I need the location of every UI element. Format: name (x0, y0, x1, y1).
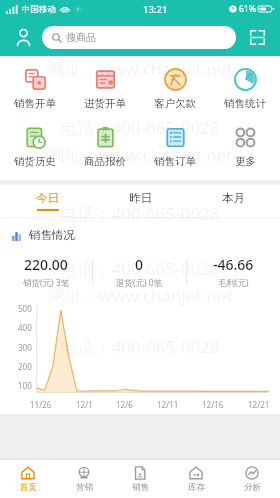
staticText: 客户欠款 (154, 97, 196, 110)
staticText: 61% (239, 3, 256, 15)
staticText: 12/1 (76, 399, 93, 410)
staticText: 300 (18, 342, 32, 353)
staticText: 中国移动 (22, 4, 56, 15)
staticText: 200 (18, 361, 32, 372)
button[interactable]: 销售统计 (210, 66, 280, 112)
staticText: 0 (135, 255, 144, 274)
staticText: 11/26 (30, 399, 52, 410)
staticText: 网址：www.chanjet.net (0, 284, 280, 307)
staticText: 商品报价 (84, 155, 126, 168)
staticText: 营销 (76, 482, 93, 493)
staticText: 220.00 (24, 255, 68, 274)
staticText: 分析 (244, 482, 261, 493)
staticText: 更多 (235, 155, 256, 168)
staticText: 销售统计 (224, 97, 266, 110)
button[interactable]: Scan (244, 24, 270, 50)
staticText: 电话：400-665-0028 (0, 335, 280, 358)
staticText: 退货(元) 0笔 (116, 277, 163, 289)
button[interactable]: 进货开单 (70, 66, 140, 112)
staticText: 库存 (188, 482, 205, 493)
button[interactable]: Profile (10, 24, 36, 50)
staticText: 网址：www.chanjet.net (0, 57, 280, 80)
button[interactable]: 搜商品 (42, 26, 236, 49)
button[interactable]: 昨日 (94, 185, 187, 217)
staticText: 100 (18, 380, 32, 391)
staticText: 销货历史 (14, 155, 56, 168)
staticText: 本月 (222, 191, 245, 205)
staticText: 销售订单 (154, 155, 196, 168)
button[interactable]: 分析 (224, 460, 280, 498)
button[interactable]: 更多 (210, 124, 280, 170)
button[interactable]: 商品报价 (70, 124, 140, 170)
staticText: 进货开单 (84, 97, 126, 110)
staticText: 电话：400-665-0028 (0, 257, 280, 280)
staticText: 销货(元) 3笔 (23, 277, 70, 289)
staticText: 电话：400-665-0028 (0, 202, 280, 225)
staticText: 首页 (20, 482, 37, 493)
staticText: 400 (18, 322, 32, 333)
staticText: 电话：400-665-0028 (0, 116, 280, 139)
button[interactable]: 首页 (0, 460, 56, 498)
staticText: 12/16 (202, 399, 224, 410)
staticText: 12/11 (157, 399, 179, 410)
button[interactable]: 库存 (168, 460, 224, 498)
button[interactable]: 销售开单 (0, 66, 70, 112)
button[interactable]: 客户欠款 (140, 66, 210, 112)
staticText: 网址：www.chanjet.net (0, 143, 280, 166)
staticText: 毛利(元) (218, 277, 249, 289)
button[interactable]: 本月 (187, 185, 280, 217)
button[interactable]: 销售订单 (140, 124, 210, 170)
button[interactable]: 营销 (56, 460, 112, 498)
staticText: -46.66 (213, 255, 254, 274)
staticText: 销售情况 (29, 228, 75, 242)
staticText: 搜商品 (66, 31, 96, 44)
staticText: 12/21 (248, 399, 270, 410)
button[interactable]: 销售 (112, 460, 168, 498)
staticText: 销售 (132, 482, 149, 493)
staticText: 500 (18, 303, 32, 314)
staticText: 13:21 (143, 3, 168, 16)
staticText: 今日 (36, 191, 59, 205)
staticText: 昨日 (129, 191, 152, 205)
button[interactable]: 今日 (0, 185, 94, 217)
button[interactable]: 销货历史 (0, 124, 70, 170)
staticText: 12/6 (116, 399, 133, 410)
staticText: 销售开单 (14, 97, 56, 110)
